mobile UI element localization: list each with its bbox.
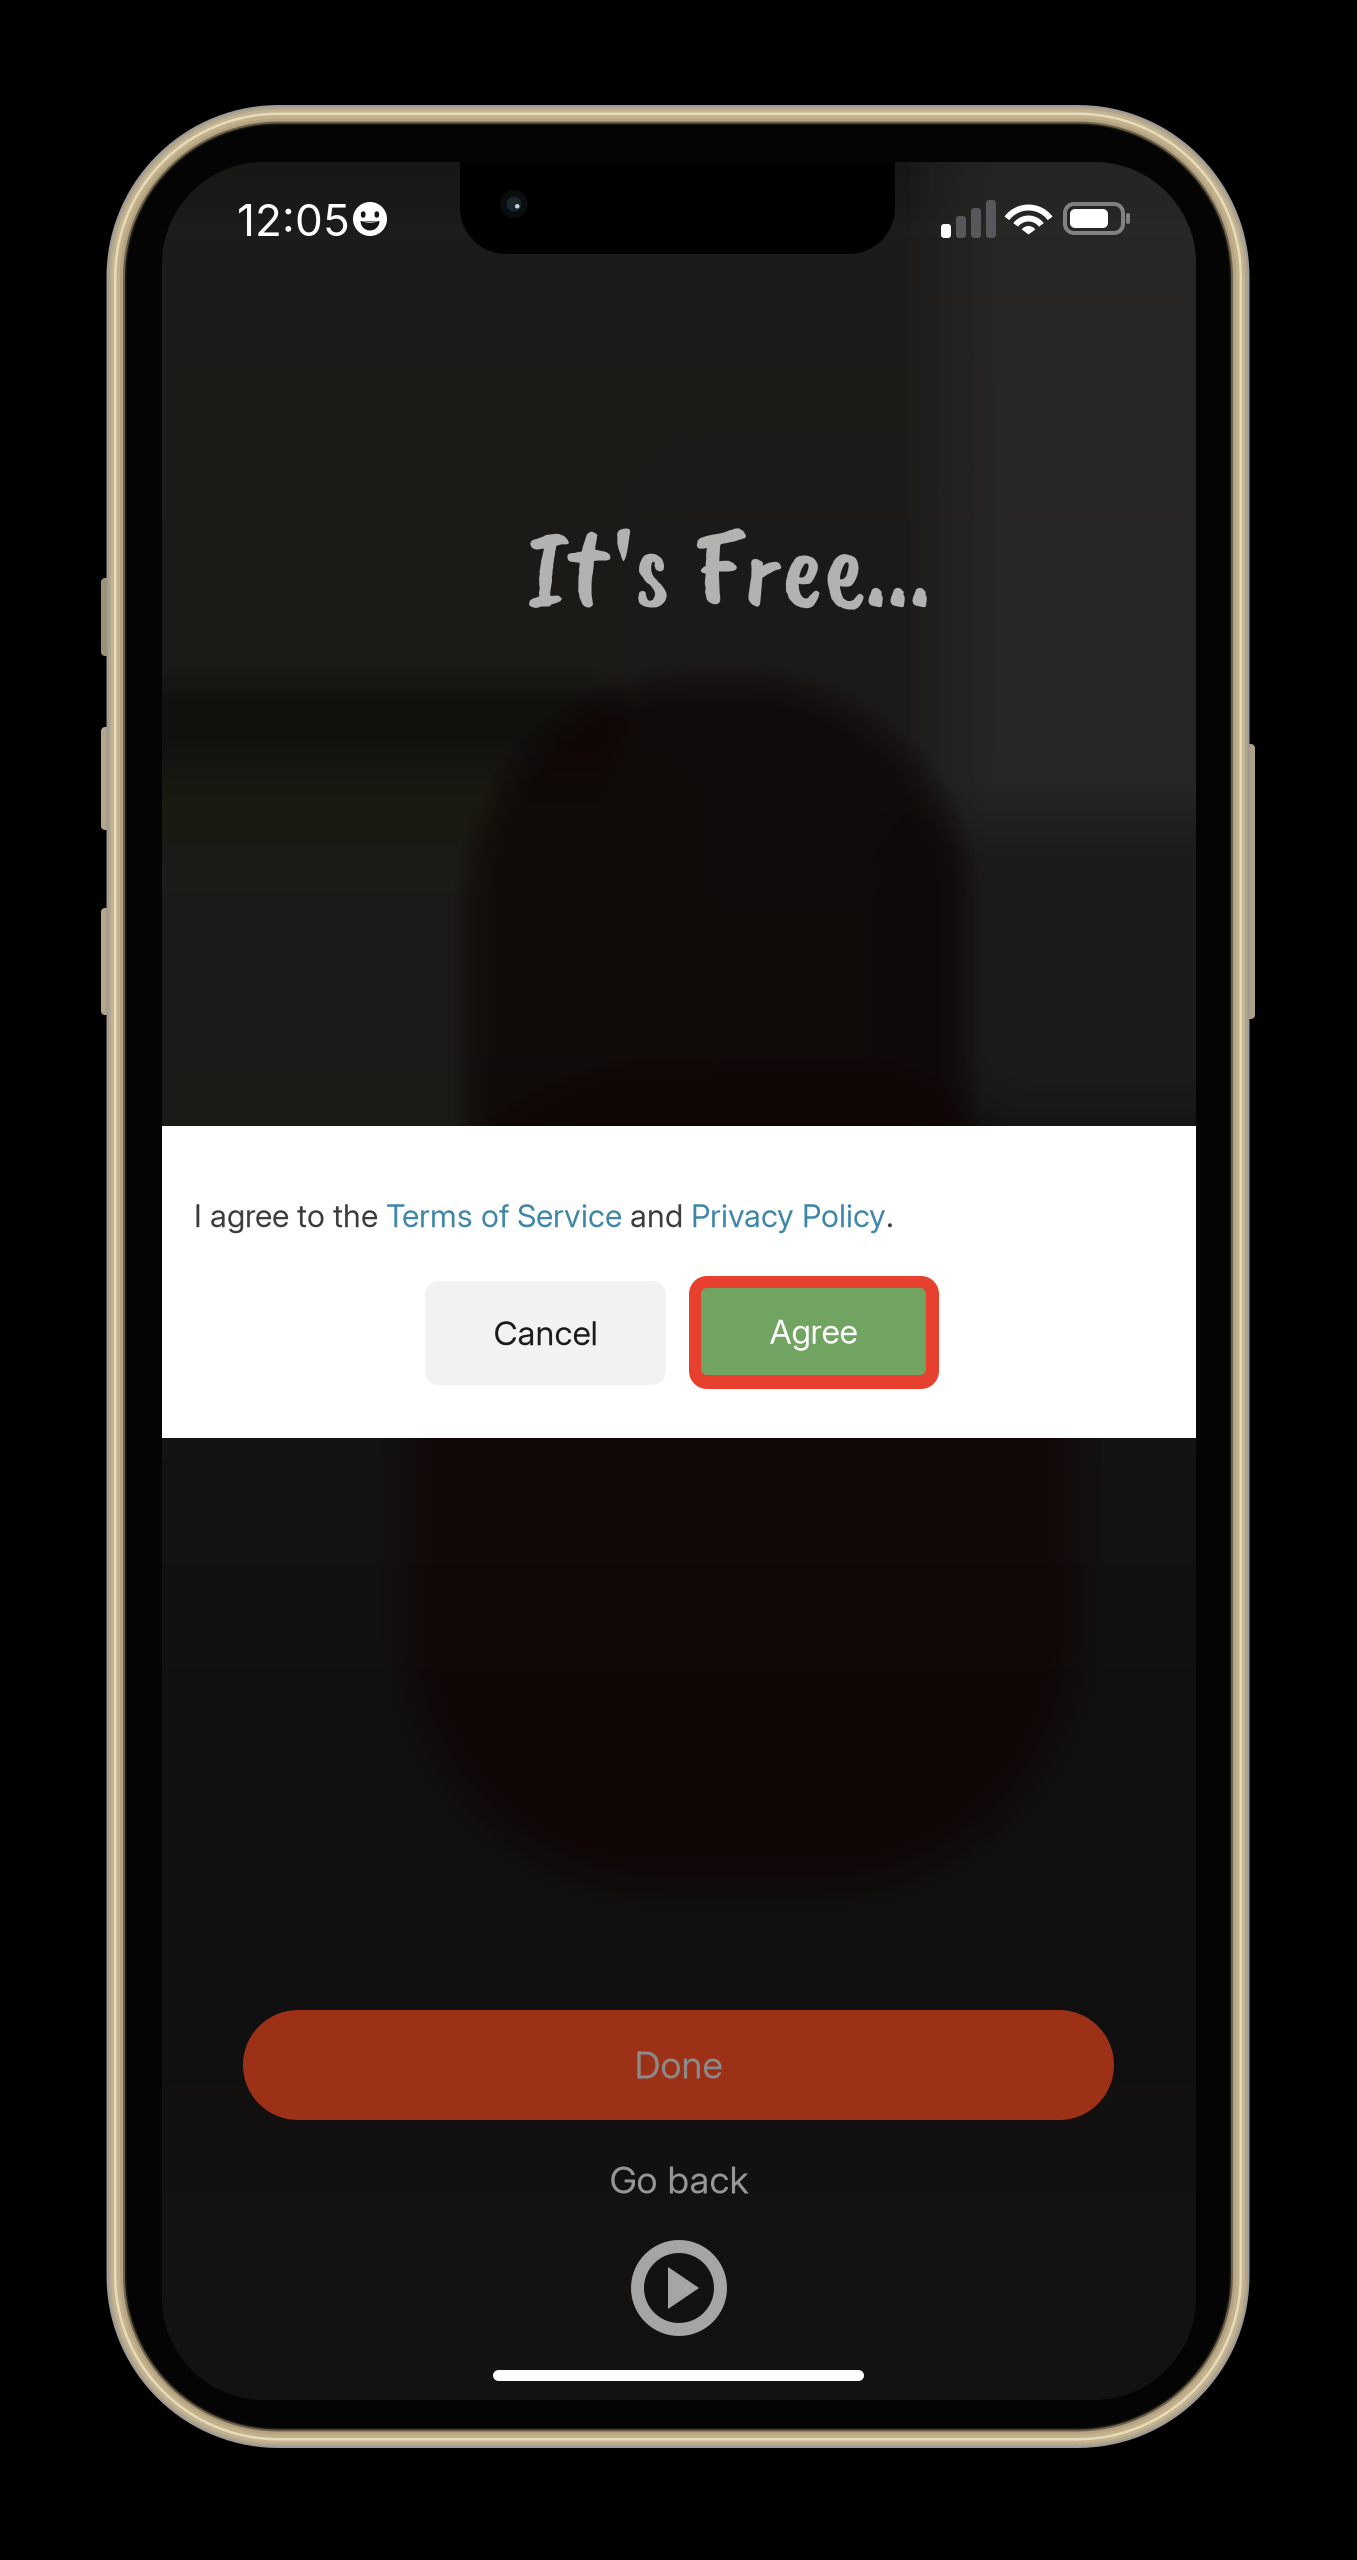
button[interactable]: Done [243,2010,1114,2120]
staticText: 12:05 [237,193,350,247]
button[interactable]: Play [631,2240,727,2336]
button[interactable]: Terms of Service [386,1197,622,1235]
staticText: and [622,1197,691,1235]
staticText: Cancel [493,1313,597,1353]
button[interactable]: Agree [689,1276,939,1389]
staticText: Agree [769,1311,857,1352]
staticText: Terms of Service [386,1197,622,1235]
staticText: I agree to the [194,1197,386,1235]
button[interactable]: Privacy Policy [691,1197,886,1235]
staticText: Go back [609,2157,748,2203]
staticText: It's Free... [527,497,931,637]
button[interactable]: Cancel [425,1281,666,1385]
button[interactable]: Go back [529,2147,829,2213]
staticText: Privacy Policy [691,1197,886,1235]
staticText: Done [634,2042,722,2088]
staticText: . [886,1197,894,1235]
